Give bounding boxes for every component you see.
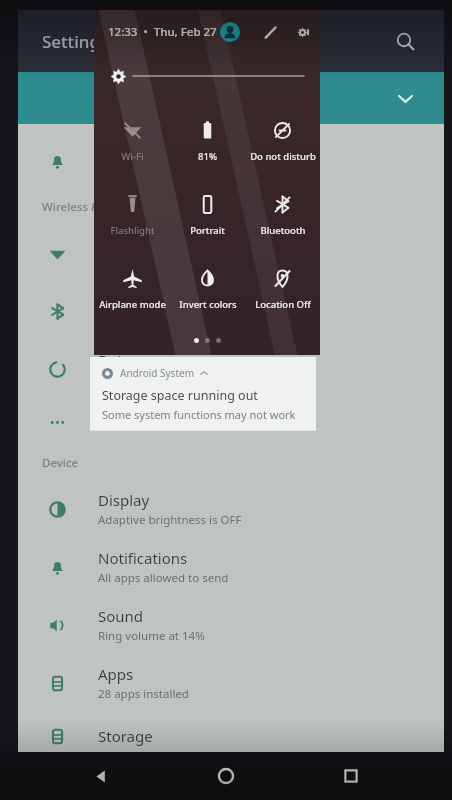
staticText: Settings: [42, 30, 109, 53]
staticText: Ring volume at 14%: [98, 628, 205, 644]
button[interactable]: Search: [18, 132, 444, 190]
staticText: Location Off: [255, 298, 311, 311]
staticText: Invert colors: [179, 298, 237, 311]
button[interactable]: Expand suggestion: [18, 72, 444, 124]
staticText: 28 apps installed: [98, 686, 189, 702]
button[interactable]: Search: [386, 22, 424, 60]
staticText: Wi‑Fi: [121, 150, 144, 163]
staticText: Disconnected: [98, 256, 172, 272]
staticText: Portrait: [190, 224, 225, 237]
button[interactable]: [110, 54, 304, 98]
button[interactable]: Do not disturb: [245, 104, 320, 178]
button[interactable]: Android System: [90, 357, 316, 431]
staticText: Airplane mode: [99, 298, 166, 311]
button[interactable]: Airplane mode: [94, 252, 170, 326]
button[interactable]: Wi‑Fi: [94, 104, 170, 178]
button[interactable]: Location Off: [245, 252, 320, 326]
button[interactable]: Portrait: [170, 178, 245, 252]
staticText: Wireless & networks: [42, 199, 154, 215]
staticText: Bluetooth: [260, 224, 306, 237]
staticText: Search: [98, 142, 146, 162]
staticText: Do not disturb: [250, 150, 316, 163]
staticText: Data usage: [98, 350, 178, 370]
button[interactable]: Data usage: [18, 340, 444, 398]
staticText: Sound: [98, 606, 144, 626]
button[interactable]: Notifications: [18, 538, 444, 596]
staticText: Display: [98, 490, 150, 510]
staticText: Storage space running out: [102, 387, 258, 404]
button[interactable]: Sound: [18, 596, 444, 654]
button[interactable]: 81%: [170, 104, 245, 178]
staticText: Android System: [120, 366, 195, 380]
button[interactable]: More: [18, 398, 444, 446]
staticText: Flashlight: [110, 224, 155, 237]
staticText: 12:33 • Thu, Feb 27: [108, 24, 217, 40]
button[interactable]: Recent apps: [327, 752, 375, 800]
button[interactable]: Apps: [18, 654, 444, 712]
button[interactable]: Back: [77, 752, 125, 800]
staticText: Storage: [98, 726, 153, 746]
staticText: Adaptive brightness is OFF: [98, 512, 242, 528]
button[interactable]: Flashlight: [94, 178, 170, 252]
button[interactable]: Settings: [297, 19, 308, 45]
button[interactable]: Home: [202, 752, 250, 800]
staticText: 81%: [198, 150, 217, 163]
button[interactable]: Display: [18, 480, 444, 538]
staticText: Device: [42, 455, 79, 471]
staticText: All apps allowed to send: [98, 570, 229, 586]
button[interactable]: Expand suggestion: [388, 81, 422, 115]
button[interactable]: Bluetooth: [245, 178, 320, 252]
button[interactable]: User account: [217, 19, 243, 45]
button[interactable]: Storage: [18, 712, 444, 760]
staticText: Notifications: [98, 548, 188, 568]
staticText: Some system functions may not work: [102, 407, 296, 422]
staticText: More: [98, 412, 136, 432]
button[interactable]: Edit tiles: [257, 19, 283, 45]
button[interactable]: Bluetooth: [18, 282, 444, 340]
staticText: Search settings: [98, 164, 181, 180]
staticText: Bluetooth: [98, 292, 168, 312]
button[interactable]: Invert colors: [170, 252, 245, 326]
staticText: Apps: [98, 664, 134, 684]
staticText: 7.4 GB of data used: [98, 372, 204, 388]
button[interactable]: Wi‑Fi: [18, 224, 444, 282]
